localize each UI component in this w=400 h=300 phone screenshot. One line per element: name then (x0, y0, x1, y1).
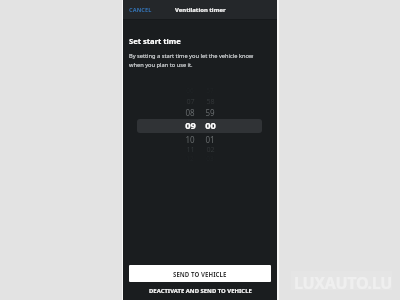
button[interactable]: 59 (198, 106, 222, 118)
staticText: DEACTIVATE AND SEND TO VEHICLE (149, 287, 252, 295)
button[interactable]: 02 (198, 143, 222, 155)
staticText: 09 (185, 119, 196, 131)
button[interactable]: 09 (178, 119, 202, 131)
staticText: 58 (206, 96, 215, 106)
staticText: when you plan to use it. (129, 61, 193, 69)
staticText: 11 (186, 144, 195, 154)
staticText: 07 (186, 96, 195, 106)
button[interactable]: 00 (198, 119, 222, 131)
staticText: 10 (185, 134, 195, 145)
button[interactable]: SEND TO VEHICLE (129, 265, 271, 282)
staticText: 59 (205, 107, 215, 118)
button[interactable]: 08 (178, 106, 202, 118)
staticText: By setting a start time you let the vehi… (129, 52, 254, 60)
button[interactable]: 01 (198, 133, 222, 145)
staticText: Set start time (129, 36, 181, 46)
button[interactable]: DEACTIVATE AND SEND TO VEHICLE (129, 284, 271, 298)
button[interactable]: 10 (178, 133, 202, 145)
staticText: Ventilation timer (175, 6, 226, 14)
other: Selected time 09:00 (137, 119, 262, 133)
staticText: CANCEL (129, 6, 152, 14)
button[interactable]: 58 (198, 95, 222, 107)
button[interactable]: 07 (178, 95, 202, 107)
staticText: 08 (185, 107, 195, 118)
staticText: 00 (205, 119, 216, 131)
staticText: LUXAUTO.LU (294, 272, 393, 294)
staticText: 02 (206, 144, 215, 154)
button[interactable]: CANCEL (126, 2, 155, 18)
staticText: SEND TO VEHICLE (173, 270, 227, 278)
staticText: 01 (205, 134, 215, 145)
